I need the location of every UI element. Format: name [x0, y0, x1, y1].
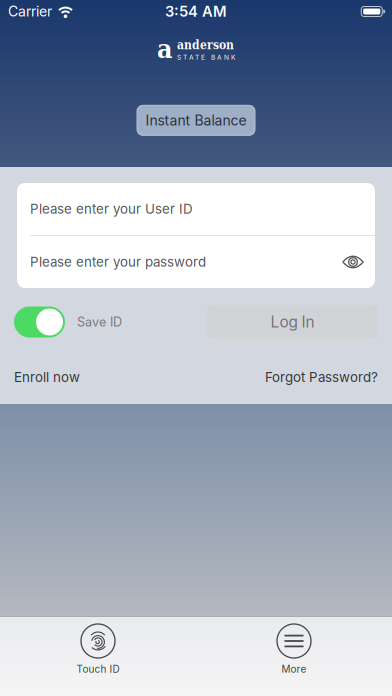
button[interactable]: Touch ID — [0, 624, 196, 675]
button[interactable]: Please enter your User ID — [17, 183, 375, 235]
staticText: Touch ID — [76, 663, 119, 675]
staticText: a — [157, 33, 173, 64]
button[interactable]: Save ID — [14, 306, 65, 337]
staticText: Carrier — [8, 3, 52, 20]
staticText: Log In — [270, 313, 314, 331]
button[interactable]: Log In — [207, 305, 378, 339]
staticText: Instant Balance — [145, 112, 246, 129]
staticText: More — [281, 663, 306, 675]
staticText: Save ID — [77, 314, 122, 330]
staticText: Please enter your User ID — [30, 201, 193, 217]
button[interactable]: Enroll now — [14, 369, 80, 385]
button[interactable]: Instant Balance — [137, 105, 255, 135]
staticText: STATE BANK — [177, 53, 235, 61]
button[interactable]: Please enter your password — [17, 236, 375, 288]
staticText: 3:54 AM — [165, 3, 227, 20]
button[interactable]: Forgot Password? — [265, 369, 378, 385]
staticText: Enroll now — [14, 369, 80, 385]
staticText: Forgot Password? — [265, 369, 378, 385]
button[interactable]: More — [196, 624, 392, 675]
button[interactable]: Show password — [342, 254, 364, 269]
staticText: Please enter your password — [30, 254, 206, 270]
staticText: anderson — [177, 38, 234, 52]
